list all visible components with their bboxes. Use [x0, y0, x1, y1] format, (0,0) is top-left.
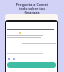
button[interactable] — [7, 62, 56, 68]
staticText: Pregunta a Comet todo sobre tus finanzas — [13, 2, 51, 15]
